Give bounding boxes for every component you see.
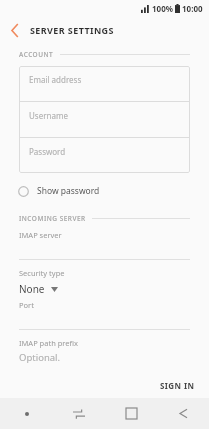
staticText: ACCOUNT [19, 50, 54, 59]
staticText: Security type [19, 268, 65, 278]
button[interactable]: Back [0, 17, 30, 43]
button[interactable]: IMAP path prefix [0, 338, 209, 364]
button[interactable]: Menu [0, 398, 53, 429]
button[interactable]: Back [157, 398, 209, 429]
button[interactable]: Username [19, 102, 190, 137]
button[interactable]: Home [105, 398, 157, 429]
staticText: 100% [152, 3, 173, 14]
button[interactable]: IMAP server [0, 230, 209, 260]
staticText: Optional. [19, 351, 61, 364]
button[interactable]: Email address [19, 66, 190, 101]
staticText: INCOMING SERVER [19, 214, 86, 223]
button[interactable]: Security type [0, 268, 209, 296]
button[interactable]: SIGN IN [146, 375, 209, 396]
staticText: IMAP path prefix [19, 338, 79, 348]
staticText: Username [29, 110, 68, 121]
staticText: Port [19, 300, 34, 310]
staticText: Password [29, 146, 66, 157]
staticText: Email address [29, 74, 82, 85]
staticText: IMAP server [19, 230, 62, 240]
staticText: 10:00 [182, 3, 203, 14]
button[interactable]: Recents [53, 398, 105, 429]
button[interactable]: Password [19, 138, 190, 173]
staticText: None [19, 282, 45, 296]
button[interactable]: Port [0, 300, 209, 330]
staticText: SERVER SETTINGS [30, 24, 114, 36]
button[interactable]: Show password [0, 181, 209, 201]
staticText: SIGN IN [160, 380, 195, 391]
staticText: Show password [37, 185, 100, 197]
